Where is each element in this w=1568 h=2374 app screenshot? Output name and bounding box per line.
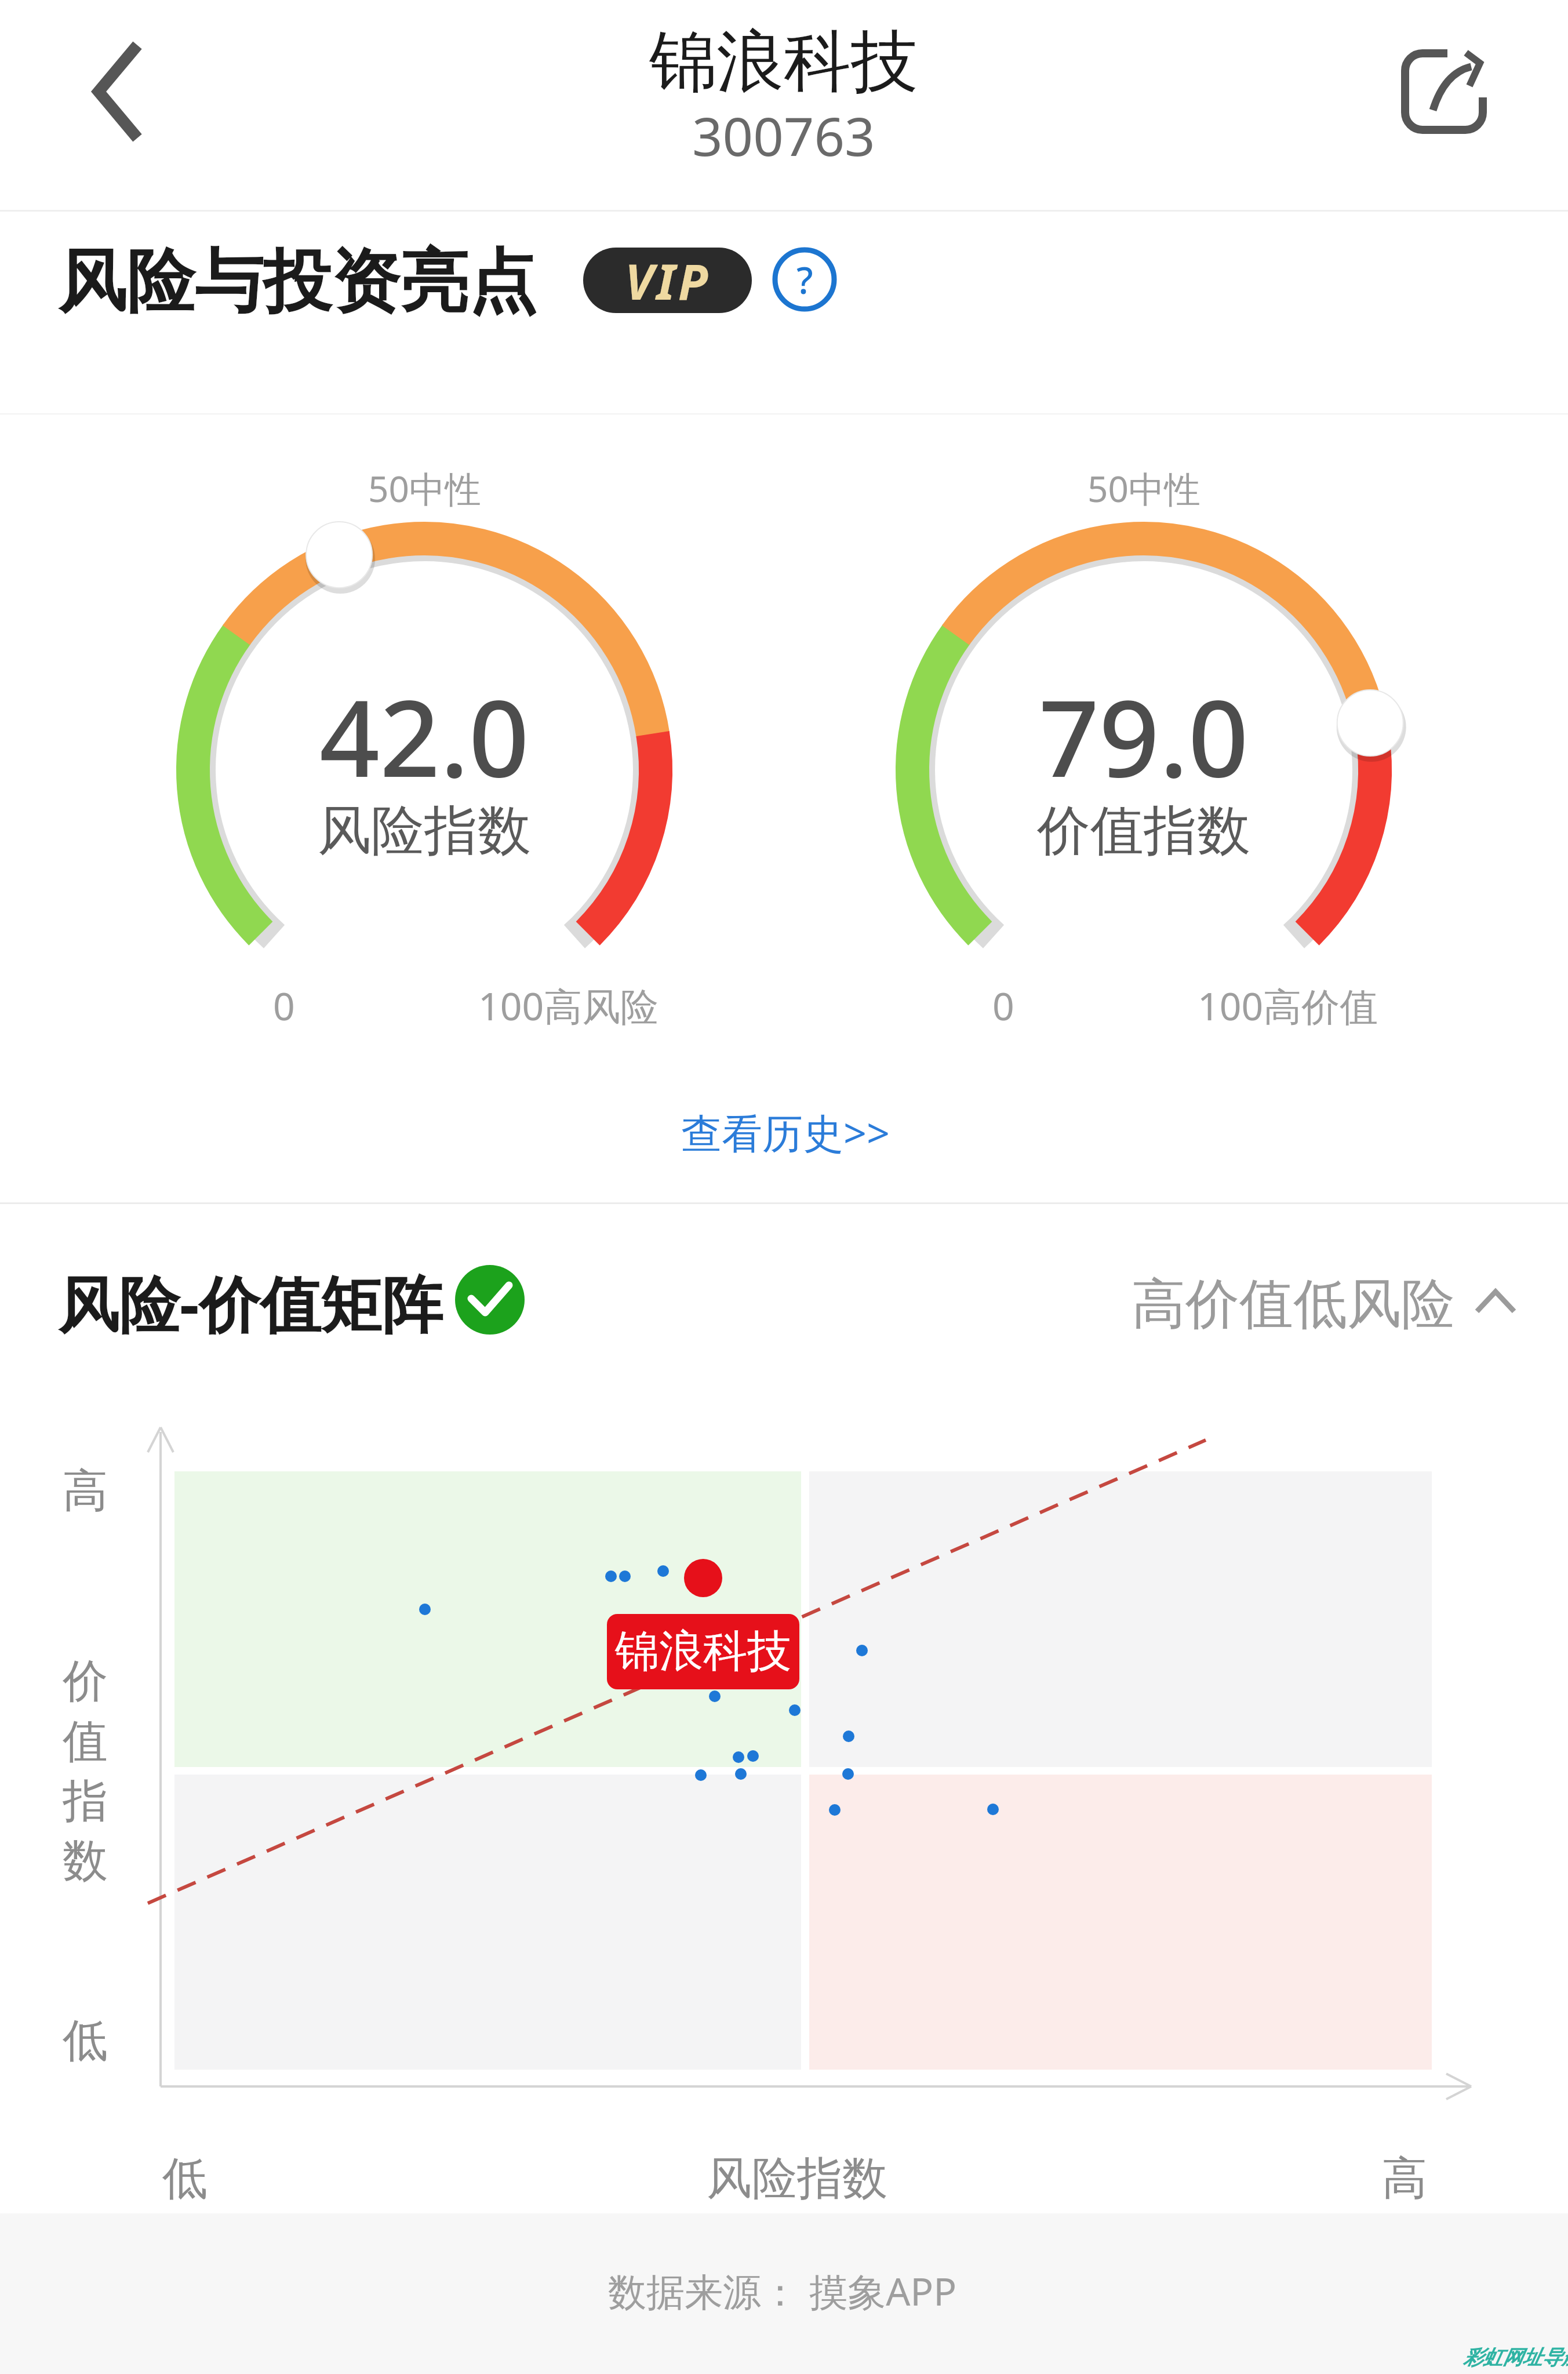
- staticText: 79.0: [1039, 664, 1249, 808]
- staticText: 查看历史>>: [681, 1104, 890, 1160]
- staticText: 0: [992, 979, 1014, 1031]
- staticText: 数据来源： 摸象APP: [608, 2264, 957, 2317]
- staticText: 风险指数: [318, 797, 531, 864]
- button[interactable]: [64, 23, 168, 157]
- staticText: 高: [1382, 2150, 1427, 2207]
- button[interactable]: [1119, 1258, 1525, 1348]
- staticText: 高: [63, 1463, 108, 1519]
- staticText: 100高价值: [1198, 979, 1378, 1031]
- staticText: 风险与投资亮点: [58, 239, 537, 325]
- staticText: 50中性: [368, 464, 481, 513]
- button[interactable]: 锦浪科技: [607, 1614, 799, 1689]
- staticText: 42.0: [319, 664, 529, 808]
- button[interactable]: [1391, 39, 1498, 144]
- staticText: VIP: [625, 248, 711, 313]
- staticText: 300763: [692, 99, 875, 172]
- staticText: 低: [63, 2012, 108, 2069]
- staticText: 彩虹网址导航: [1463, 2345, 1568, 2370]
- staticText: 高价值低风险: [1132, 1270, 1455, 1338]
- staticText: 价: [63, 1653, 108, 1710]
- staticText: 0: [273, 979, 295, 1031]
- button[interactable]: VIP: [583, 248, 752, 313]
- button[interactable]: ?: [771, 246, 838, 313]
- staticText: 低: [162, 2150, 208, 2207]
- staticText: 风险-价值矩阵: [58, 1261, 443, 1344]
- staticText: 50中性: [1087, 464, 1200, 513]
- staticText: 值: [63, 1713, 108, 1770]
- staticText: ?: [796, 255, 813, 305]
- staticText: 锦浪科技: [615, 1624, 791, 1679]
- staticText: 数: [63, 1833, 108, 1889]
- staticText: 风险指数: [707, 2150, 887, 2207]
- button[interactable]: 查看历史>>: [655, 1090, 916, 1174]
- staticText: 指: [63, 1773, 108, 1830]
- staticText: 锦浪科技: [649, 20, 918, 104]
- staticText: 100高风险: [478, 979, 659, 1031]
- staticText: 价值指数: [1037, 797, 1250, 864]
